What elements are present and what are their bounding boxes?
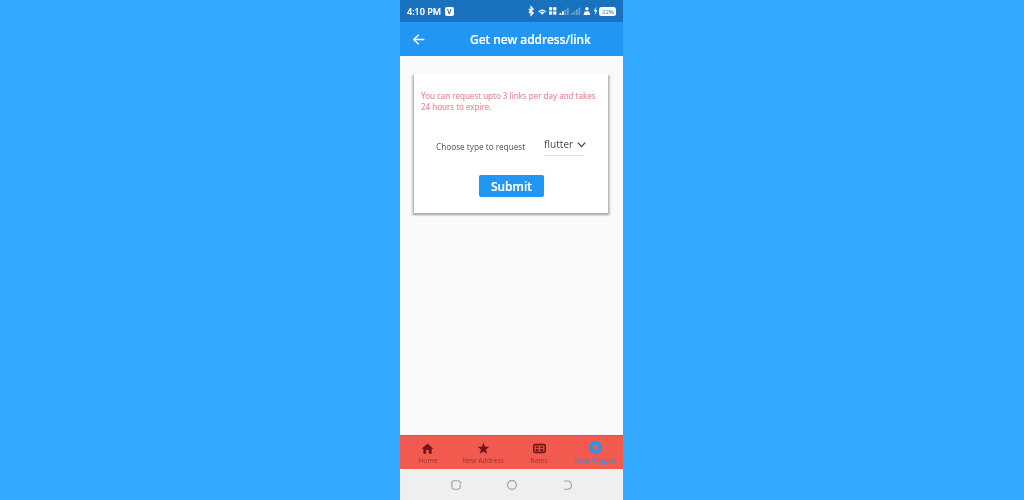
button[interactable]: Back (400, 22, 436, 56)
staticText: V (447, 7, 452, 16)
staticText: Home (418, 456, 438, 465)
button[interactable]: Submit (479, 175, 544, 197)
button[interactable]: New Crypto (567, 436, 623, 469)
staticText: Choose type to request (436, 141, 526, 152)
staticText: New Crypto (574, 455, 616, 465)
staticText: You can request upto 3 links per day and… (421, 90, 600, 112)
staticText: Rates (530, 456, 548, 465)
staticText: New Address (462, 456, 504, 465)
button[interactable]: Rates (511, 436, 567, 469)
button[interactable]: Recents (445, 474, 466, 495)
staticText: 4:10 PM (407, 5, 441, 17)
button[interactable]: New Address (455, 436, 511, 469)
button[interactable]: flutter (544, 137, 586, 156)
staticText: Submit (491, 178, 532, 194)
staticText: Get new address/link (470, 31, 591, 47)
button[interactable]: Back (557, 474, 578, 495)
staticText: 22% (602, 8, 614, 16)
staticText: flutter (544, 137, 574, 151)
button[interactable]: Home (501, 474, 522, 495)
button[interactable]: Home (400, 436, 455, 469)
